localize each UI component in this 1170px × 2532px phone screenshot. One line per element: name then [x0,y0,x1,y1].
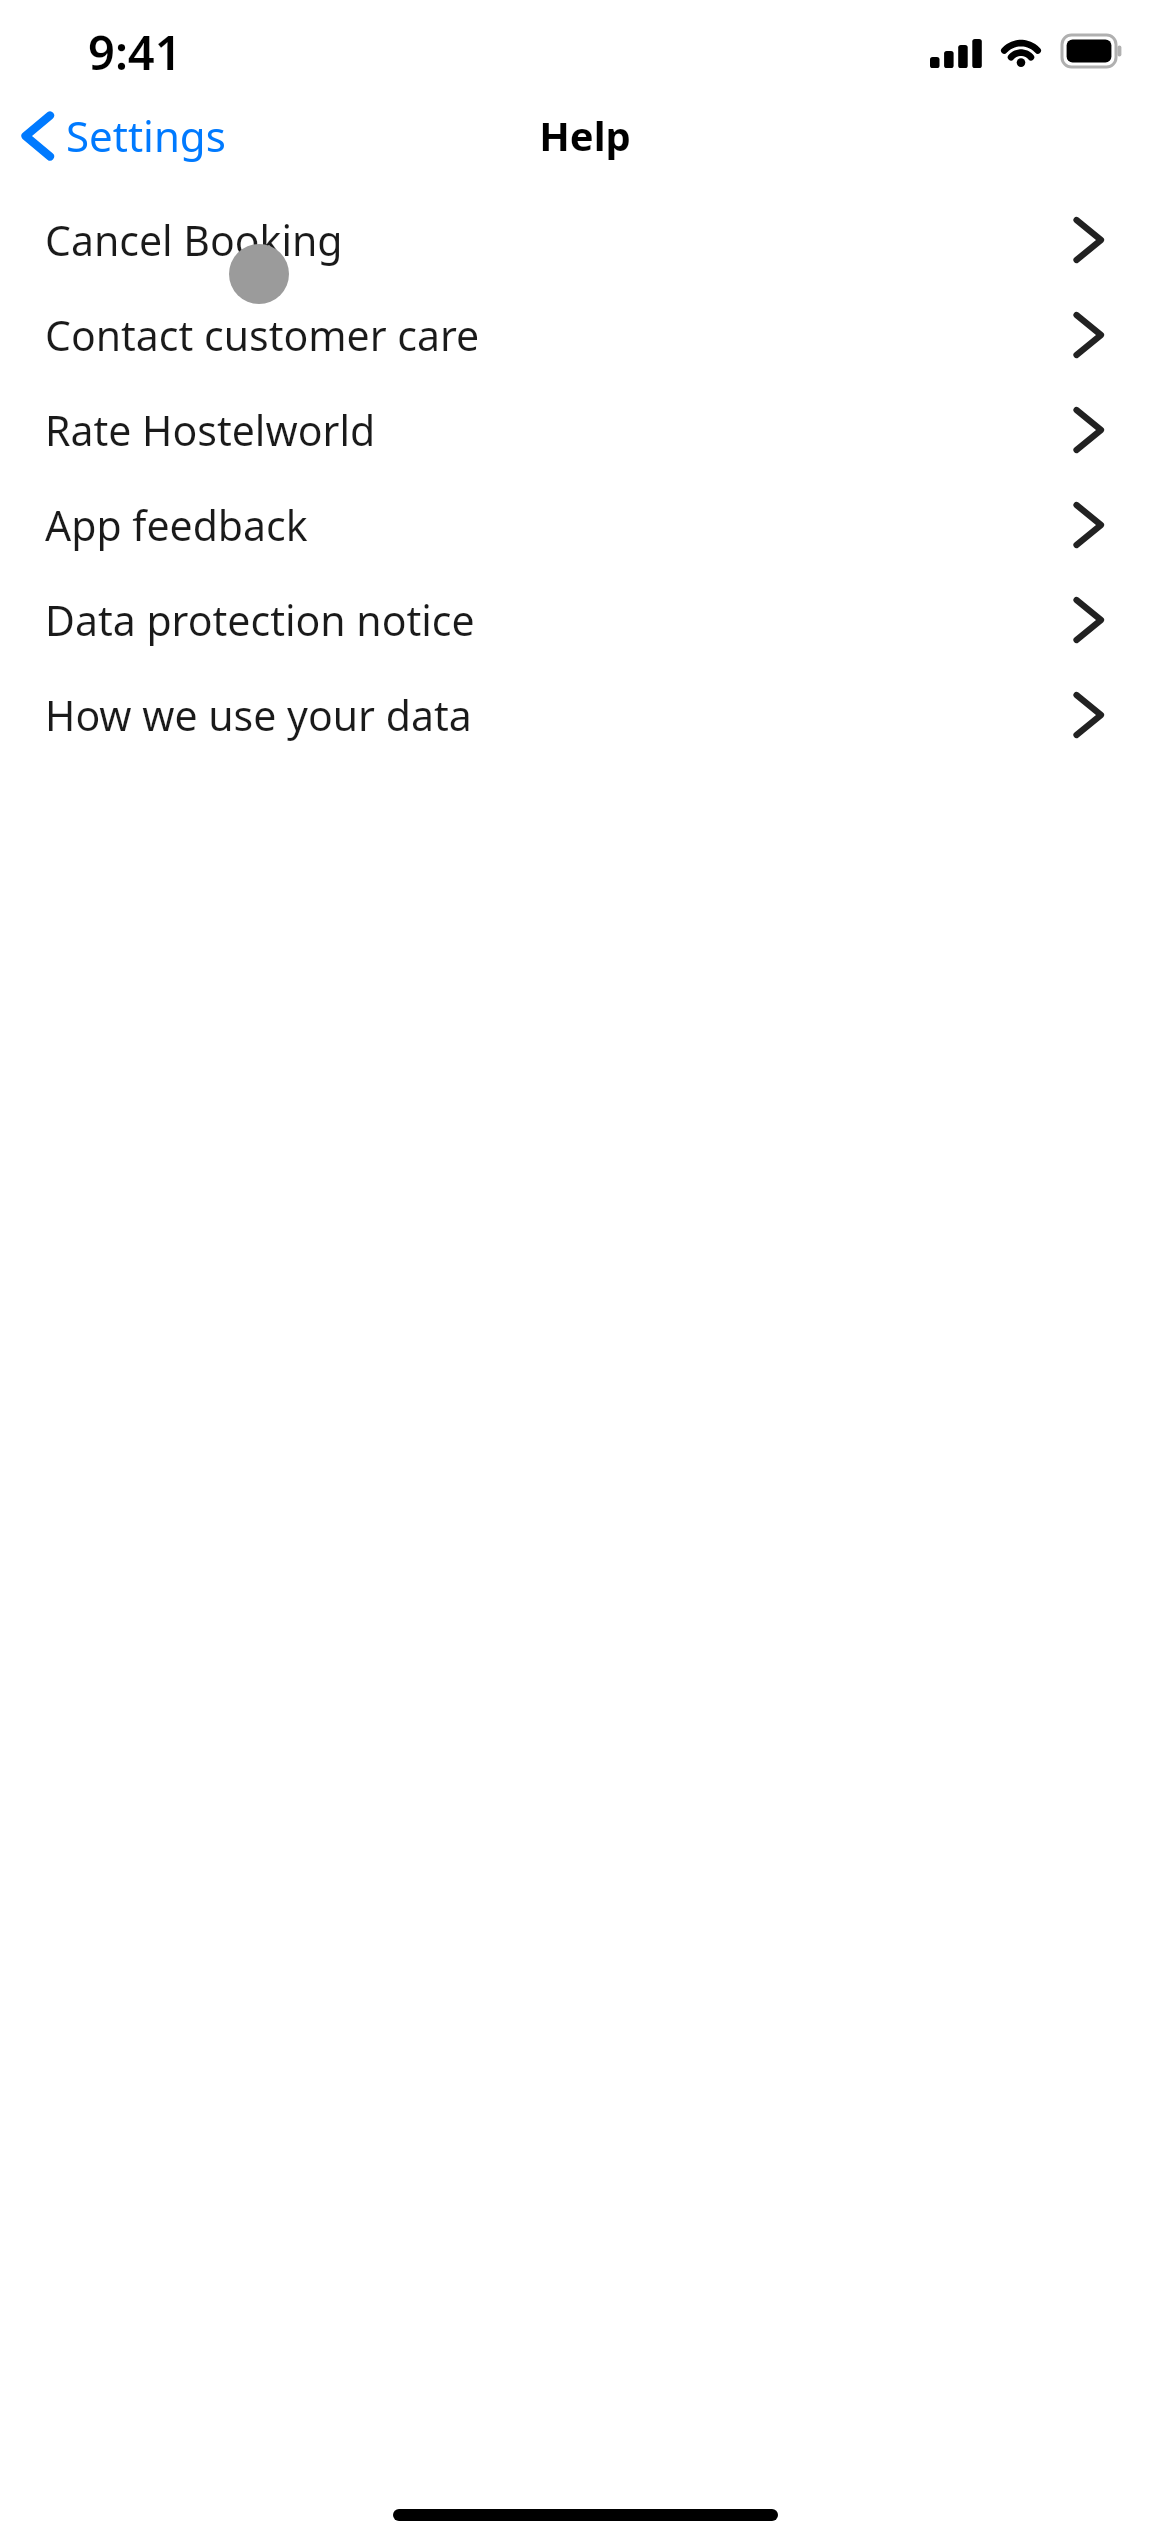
staticText: Rate Hostelworld [45,402,376,458]
button[interactable]: Rate Hostelworld [0,382,1170,477]
staticText: How we use your data [45,687,472,743]
staticText: Cancel Booking [45,212,343,268]
button[interactable]: How we use your data [0,667,1170,762]
other: Back [22,110,52,162]
staticText: App feedback [45,497,308,553]
staticText: Contact customer care [45,307,480,363]
staticText: 9:41 [88,20,182,84]
button[interactable]: Data protection notice [0,572,1170,667]
button[interactable]: Contact customer care [0,287,1170,382]
button[interactable]: Cancel Booking [0,192,1170,287]
staticText: Help [539,108,631,162]
staticText: Data protection notice [45,592,475,648]
staticText: Settings [66,107,226,164]
button[interactable]: App feedback [0,477,1170,572]
button[interactable]: Back [0,101,240,170]
